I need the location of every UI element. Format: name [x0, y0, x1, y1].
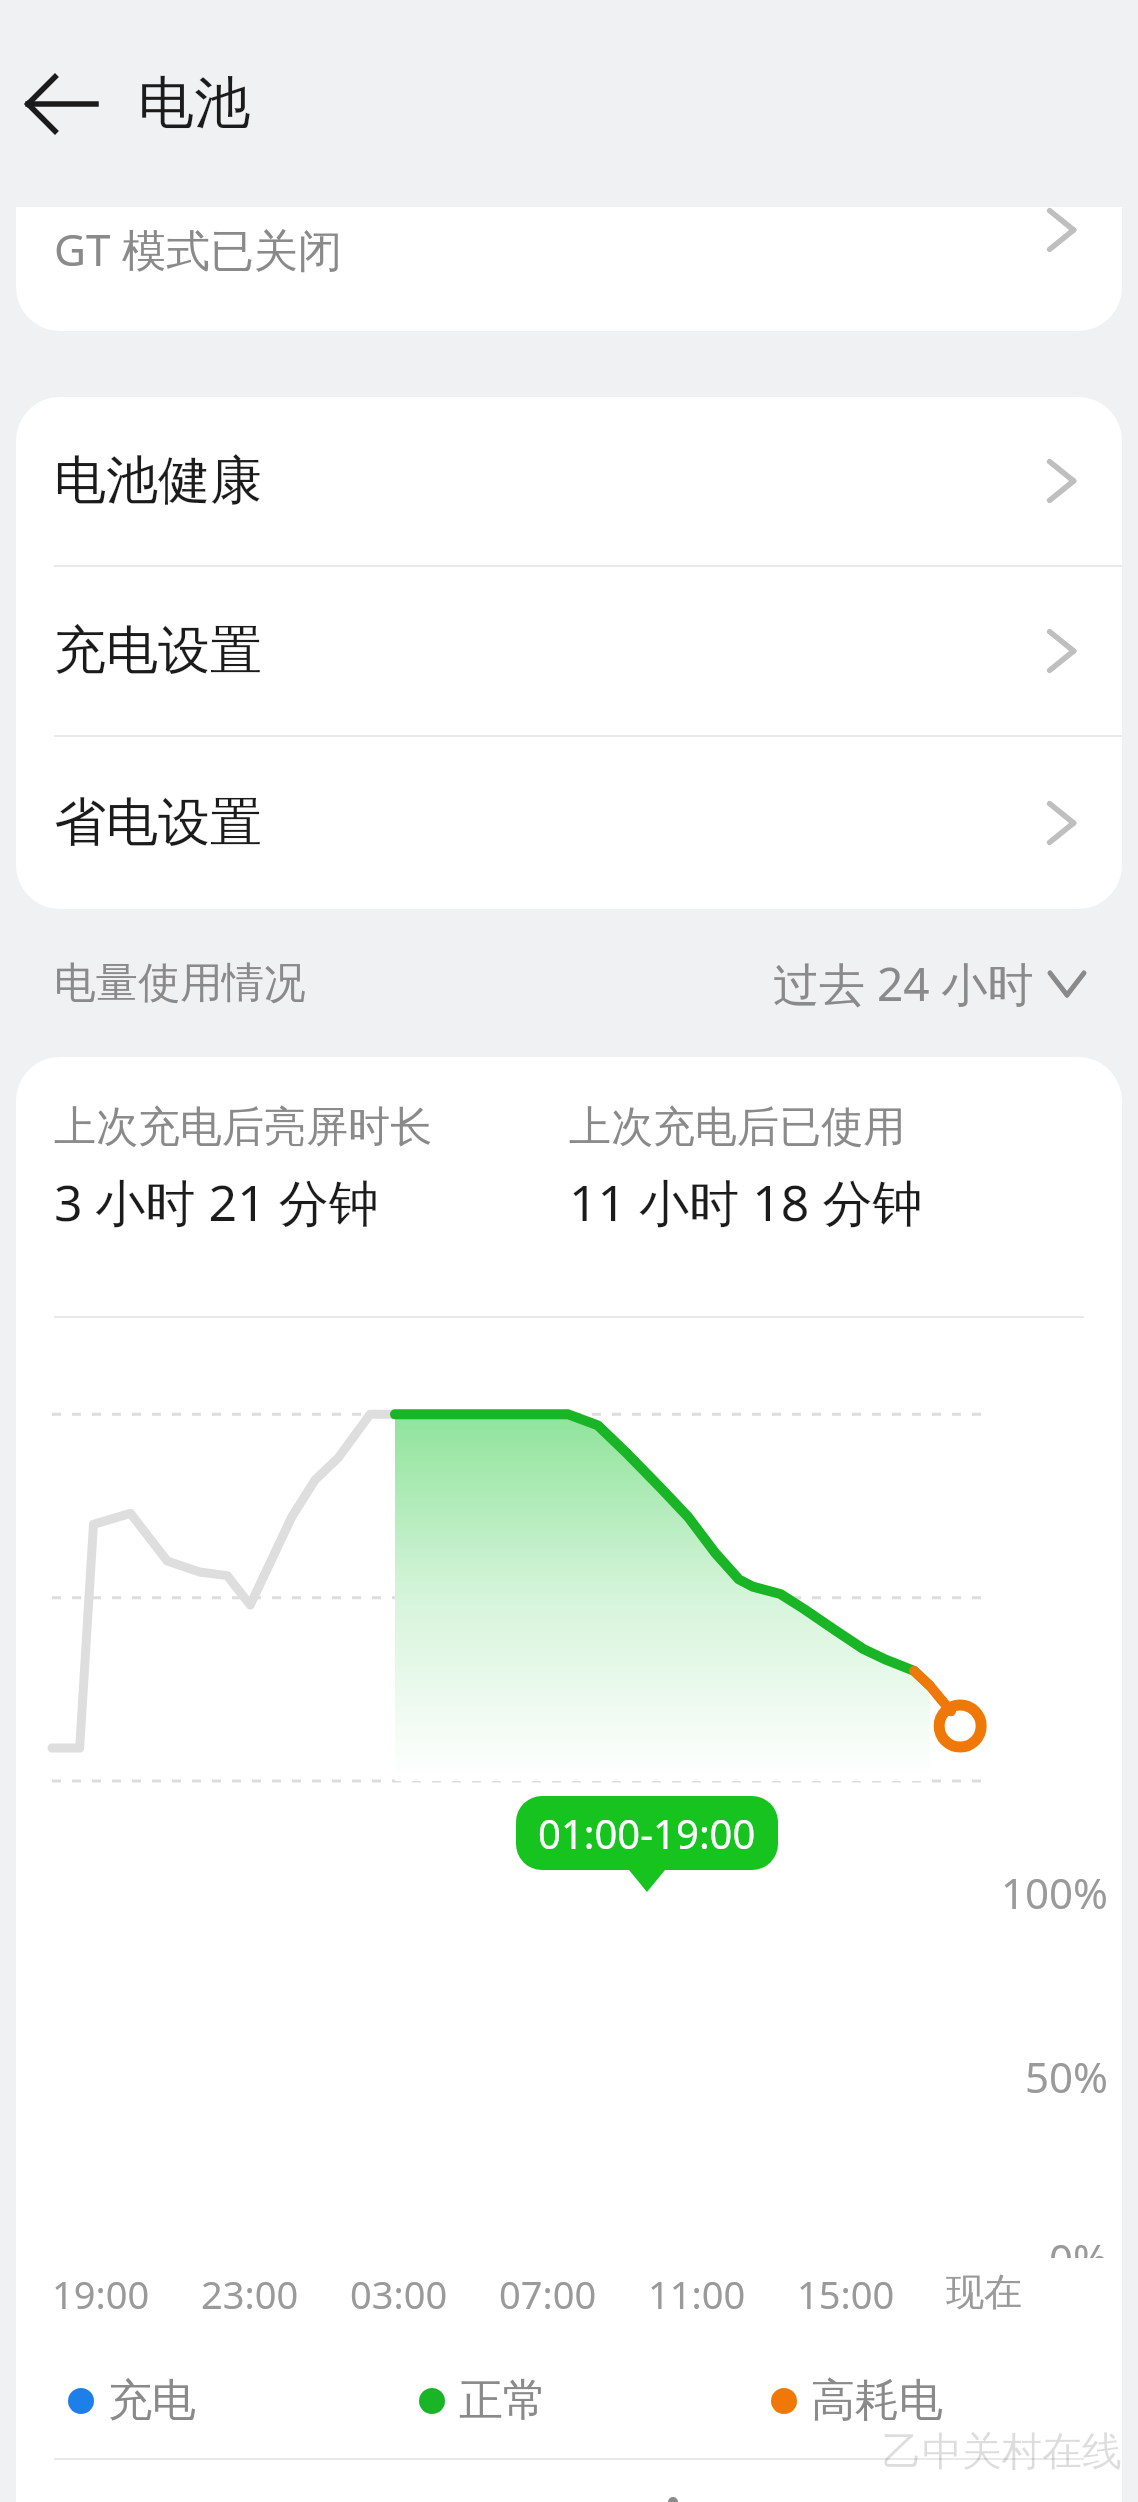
staticText: 高耗电	[811, 2373, 943, 2428]
staticText: 01:00-19:00	[538, 1806, 756, 1860]
staticText: 11:00	[648, 2268, 746, 2320]
staticText: 23:00	[201, 2268, 299, 2320]
button[interactable]: Back	[10, 56, 106, 152]
button[interactable]: 省电设置	[16, 737, 1122, 909]
staticText: 省电设置	[54, 790, 262, 856]
button[interactable]: 过去 24 小时	[773, 952, 1084, 1015]
staticText: 50%	[1025, 2048, 1108, 2105]
button[interactable]: 电池健康	[16, 397, 1122, 567]
staticText: 3 小时 21 分钟	[54, 1168, 379, 1236]
button[interactable]: GT 模式已关闭	[16, 207, 1122, 331]
staticText: 电池健康	[54, 448, 262, 514]
button[interactable]: 充电设置	[16, 567, 1122, 737]
staticText: 07:00	[499, 2268, 597, 2320]
staticText: 过去 24 小时	[773, 952, 1034, 1015]
staticText: 0%	[1049, 2230, 1108, 2258]
staticText: 11 小时 18 分钟	[569, 1168, 923, 1236]
staticText: 19:00	[52, 2268, 150, 2320]
staticText: GT 模式已关闭	[54, 219, 342, 279]
staticText: 100%	[1001, 1864, 1108, 1921]
staticText: 电池	[138, 68, 250, 139]
staticText: 正常	[459, 2373, 547, 2428]
staticText: 03:00	[350, 2268, 448, 2320]
staticText: 充电	[108, 2373, 196, 2428]
staticText: 乙中关村在线	[882, 2426, 1122, 2476]
staticText: 15:00	[797, 2268, 895, 2320]
staticText: 电量使用情况	[54, 957, 306, 1010]
staticText: 现在	[946, 2268, 1022, 2316]
staticText: 充电设置	[54, 618, 262, 684]
staticText: 上次充电后亮屏时长	[54, 1101, 432, 1154]
staticText: 上次充电后已使用	[569, 1101, 905, 1154]
